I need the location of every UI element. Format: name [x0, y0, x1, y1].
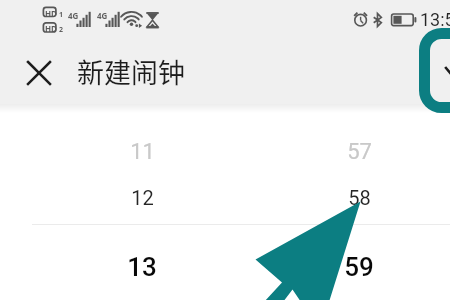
staticText: 58 — [348, 186, 371, 209]
staticText: 4G — [97, 10, 108, 21]
staticText: 13:5 — [420, 9, 450, 30]
staticText: 11 — [130, 139, 155, 165]
staticText: 2 — [59, 25, 64, 35]
button[interactable]: 12 — [97, 175, 187, 219]
button[interactable]: 57 — [314, 130, 404, 174]
button[interactable]: Close — [14, 48, 64, 98]
staticText: HD — [45, 23, 57, 34]
button[interactable]: 13 — [97, 245, 187, 289]
staticText: 1 — [59, 10, 64, 20]
staticText: 12 — [131, 186, 154, 209]
staticText: HD — [45, 8, 57, 19]
staticText: 59 — [344, 252, 374, 282]
button[interactable]: 59 — [314, 245, 404, 289]
button[interactable]: 11 — [97, 130, 187, 174]
staticText: 4G — [68, 10, 79, 21]
staticText: 13 — [127, 252, 157, 282]
staticText: 57 — [347, 139, 372, 165]
staticText: 新建闹钟 — [77, 52, 185, 91]
button[interactable]: 58 — [314, 175, 404, 219]
button[interactable]: Save alarm — [425, 46, 450, 96]
